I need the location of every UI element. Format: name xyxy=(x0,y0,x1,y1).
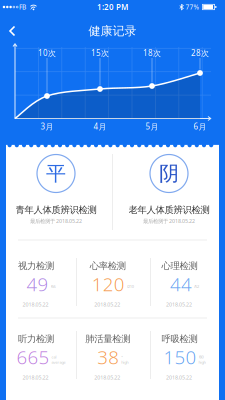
staticText: cal xyxy=(51,354,56,359)
button[interactable]: 视力检测 xyxy=(6,248,76,320)
staticText: 5月 xyxy=(145,121,158,132)
staticText: 呼吸检测 xyxy=(161,333,197,345)
staticText: 平 xyxy=(46,161,66,186)
staticText: 1:20 PM xyxy=(97,2,128,12)
staticText: 2018.05.22 xyxy=(166,374,192,381)
staticText: 10次 xyxy=(38,48,56,58)
staticText: 健康记录 xyxy=(88,24,136,38)
button[interactable]: 肺活量检测 xyxy=(78,321,148,393)
staticText: 2018.05.22 xyxy=(94,301,120,308)
button[interactable]: 阴 xyxy=(119,145,219,240)
staticText: 2018.05.22 xyxy=(166,301,192,308)
staticText: 6月 xyxy=(193,121,206,132)
staticText: /210 xyxy=(127,284,134,289)
staticText: FB xyxy=(19,3,26,11)
button[interactable]: 呼吸检测 xyxy=(149,321,219,393)
staticText: 最后检测于 2018.05.22 xyxy=(143,217,195,225)
button[interactable]: 心理检测 xyxy=(149,248,219,320)
button[interactable]: 心率检测 xyxy=(78,248,148,320)
staticText: 听力检测 xyxy=(18,333,54,345)
staticText: 心率检测 xyxy=(90,260,126,272)
staticText: /52 xyxy=(194,284,199,289)
staticText: high xyxy=(121,359,128,365)
staticText: 青年人体质辨识检测 xyxy=(15,204,96,216)
staticText: 肺活量检测 xyxy=(85,333,130,345)
staticText: 44 xyxy=(170,272,192,296)
staticText: 2018.05.22 xyxy=(22,374,48,381)
button[interactable]: 平 xyxy=(6,145,106,240)
staticText: 120 xyxy=(92,272,125,296)
staticText: high xyxy=(198,359,205,365)
staticText: 2018.05.22 xyxy=(94,374,120,381)
staticText: 老年人体质辨识检测 xyxy=(128,204,209,216)
staticText: 77% xyxy=(185,3,199,11)
button[interactable]: Back xyxy=(0,0,24,44)
staticText: 28次 xyxy=(191,48,209,58)
staticText: 4月 xyxy=(93,121,106,132)
staticText: /80 xyxy=(198,354,203,359)
staticText: 心理检测 xyxy=(161,260,197,272)
staticText: 18次 xyxy=(143,48,161,58)
staticText: 15次 xyxy=(91,48,109,58)
staticText: 最后检测于 2018.05.22 xyxy=(30,217,82,225)
staticText: 视力检测 xyxy=(18,260,54,272)
staticText: 38 xyxy=(97,345,119,369)
staticText: 49 xyxy=(26,272,48,296)
staticText: ° xyxy=(121,354,123,359)
staticText: average xyxy=(51,359,65,365)
button[interactable]: 听力检测 xyxy=(6,321,76,393)
staticText: 3月 xyxy=(40,121,53,132)
staticText: 阴 xyxy=(159,161,179,186)
staticText: /66 xyxy=(50,284,55,289)
staticText: 2018.05.22 xyxy=(22,301,48,308)
staticText: 665 xyxy=(16,345,49,369)
staticText: 150 xyxy=(163,345,196,369)
